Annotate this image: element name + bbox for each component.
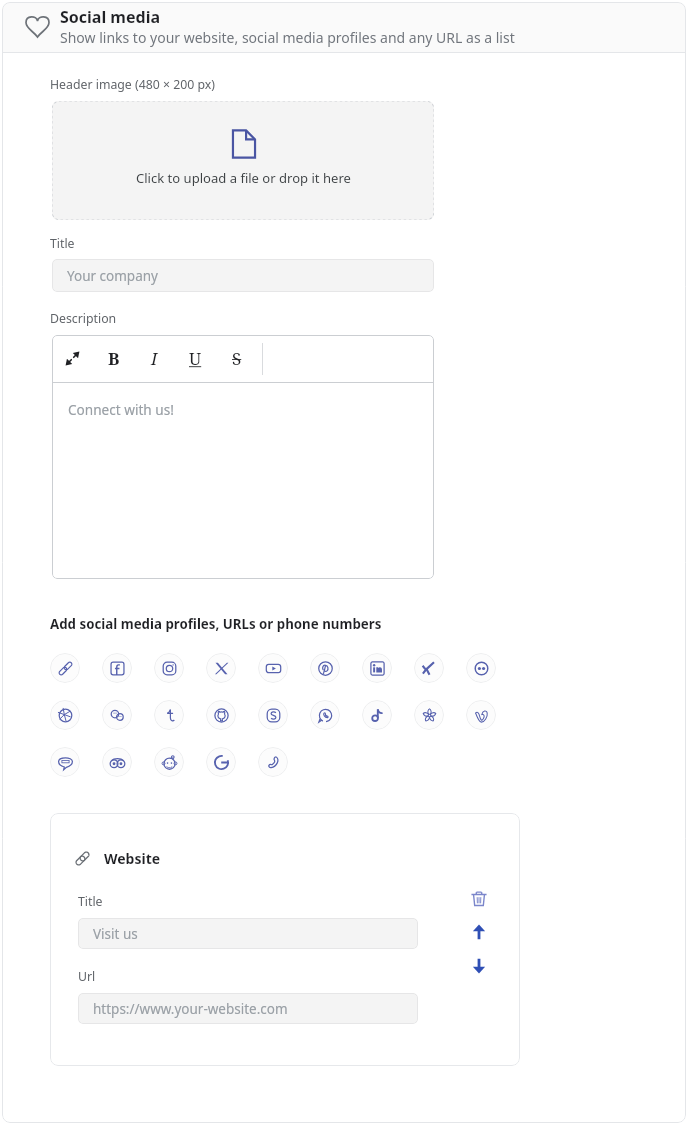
staticText: https://www.your-website.com [93,1000,288,1018]
other: Favorite [25,13,50,38]
button[interactable]: Bold [93,335,134,382]
staticText: I [151,347,158,370]
staticText: Title [50,235,75,252]
button[interactable]: Facebook [102,653,132,683]
button[interactable]: Favorite [2,2,686,53]
button[interactable]: Vimeo [466,700,496,730]
button[interactable]: Connect with us! [52,383,434,579]
staticText: S [232,347,242,370]
button[interactable]: Your company [52,259,434,292]
button[interactable]: Website [74,849,161,868]
staticText: Your company [67,267,158,285]
button[interactable]: Expand editor [52,335,93,382]
staticText: Social media [60,6,161,28]
button[interactable]: GitHub [206,700,236,730]
button[interactable]: Phone [258,747,288,777]
staticText: Visit us [93,925,138,943]
staticText: Header image (480 × 200 px) [50,76,216,93]
button[interactable]: Italic [134,335,175,382]
button[interactable]: Yelp [414,700,444,730]
button[interactable]: Click to upload a file or drop it here [52,101,434,220]
staticText: Click to upload a file or drop it here [136,169,351,187]
button[interactable]: X [206,653,236,683]
staticText: Connect with us! [68,400,174,419]
button[interactable]: Move down [470,957,488,975]
staticText: Website [104,849,161,868]
button[interactable]: Dribbble [50,700,80,730]
button[interactable]: YouTube [258,653,288,683]
button[interactable]: WhatsApp [310,700,340,730]
button[interactable]: Google [206,747,236,777]
button[interactable]: Pinterest [310,653,340,683]
button[interactable]: Tumblr [154,700,184,730]
button[interactable]: Underline [175,335,216,382]
staticText: Show links to your website, social media… [60,28,515,47]
button[interactable]: Delete [470,890,488,908]
staticText: B [108,347,120,370]
button[interactable]: Link [50,653,80,683]
staticText: Title [78,893,103,910]
button[interactable]: Behance [102,700,132,730]
button[interactable]: Move up [470,923,488,941]
button[interactable]: Strikethrough [216,335,257,382]
button[interactable]: TikTok [362,700,392,730]
button[interactable]: LinkedIn [362,653,392,683]
staticText: Add social media profiles, URLs or phone… [50,615,382,633]
button[interactable]: Flickr [466,653,496,683]
button[interactable]: Xing [414,653,444,683]
button[interactable]: LINE [50,747,80,777]
button[interactable]: Instagram [154,653,184,683]
staticText: Url [78,968,96,985]
button[interactable]: TripAdvisor [102,747,132,777]
button[interactable]: Skype [258,700,288,730]
button[interactable]: Reddit [154,747,184,777]
staticText: U [189,347,202,370]
button[interactable]: Visit us [78,918,418,949]
button[interactable]: https://www.your-website.com [78,993,418,1024]
staticText: Description [50,310,117,327]
